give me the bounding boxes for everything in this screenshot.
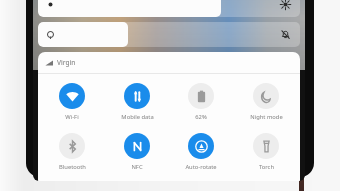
staticText: Night mode	[250, 113, 283, 121]
button[interactable]: 62%	[171, 83, 231, 121]
button[interactable]: Auto-rotate	[171, 133, 231, 171]
button[interactable]: Wi-Fi	[42, 83, 102, 121]
button[interactable]: NFC	[107, 133, 167, 171]
button[interactable]: Torch	[236, 133, 296, 171]
button[interactable]: Mobile data	[107, 83, 167, 121]
staticText: Bluetooth	[59, 163, 86, 171]
button[interactable]: Night mode	[236, 83, 296, 121]
button[interactable]: Brightness	[38, 0, 300, 17]
button[interactable]: Volume	[38, 22, 300, 47]
staticText: NFC	[131, 163, 143, 171]
staticText: Torch	[259, 163, 274, 171]
staticText: Wi-Fi	[65, 113, 79, 121]
staticText: Virgin	[57, 58, 76, 67]
button[interactable]: Bluetooth	[42, 133, 102, 171]
staticText: Mobile data	[121, 113, 154, 121]
staticText: Auto-rotate	[185, 163, 217, 171]
staticText: 62%	[195, 113, 207, 121]
